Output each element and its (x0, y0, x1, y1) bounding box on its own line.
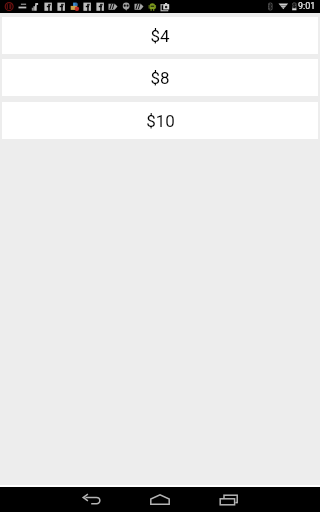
button[interactable]: Home (126, 487, 194, 512)
button[interactable]: Recent apps (194, 487, 262, 512)
staticText: $8 (150, 68, 170, 88)
button[interactable]: $10 (2, 102, 318, 139)
staticText: $4 (150, 26, 170, 46)
staticText: $10 (146, 111, 175, 131)
button[interactable]: Back (58, 487, 126, 512)
button[interactable]: $8 (2, 59, 318, 96)
staticText: 9:01 (298, 1, 316, 12)
button[interactable]: $4 (2, 17, 318, 54)
